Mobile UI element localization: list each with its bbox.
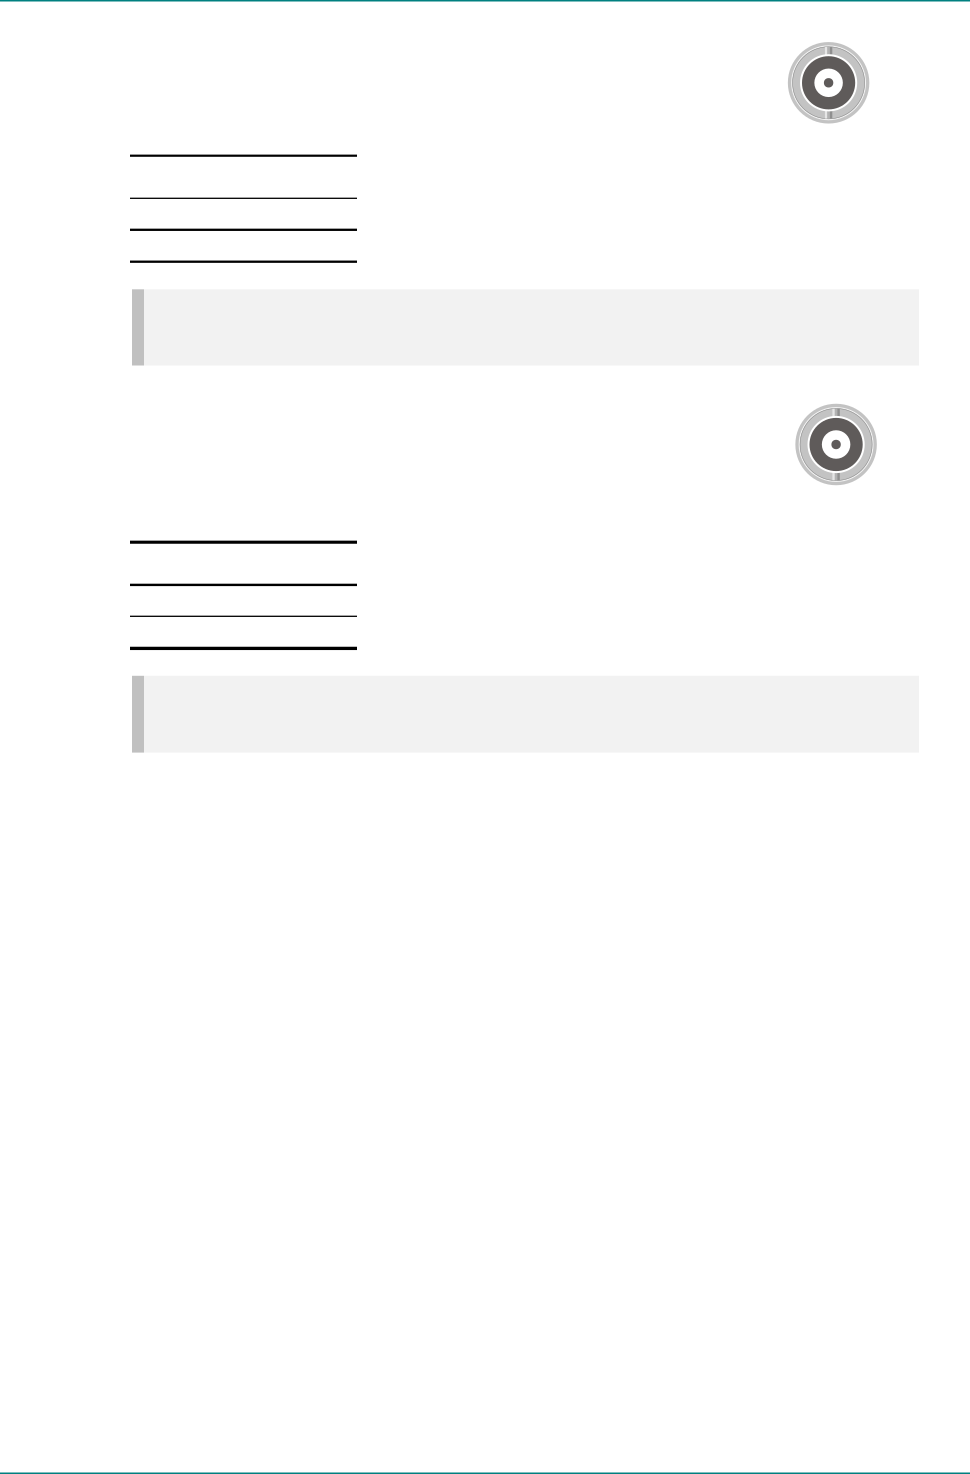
button[interactable]: Article thumbnail xyxy=(795,404,877,485)
button[interactable]: Article thumbnail xyxy=(788,42,869,123)
